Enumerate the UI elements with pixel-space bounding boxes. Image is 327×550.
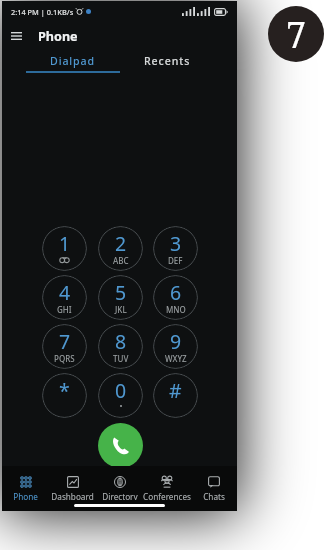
staticText: JKL xyxy=(115,304,127,315)
staticText: * xyxy=(59,377,70,404)
staticText: Phone xyxy=(38,28,78,45)
button[interactable]: 0 xyxy=(98,373,143,418)
staticText: 1 xyxy=(59,230,71,257)
staticText: TUV xyxy=(113,353,129,364)
staticText: 3 xyxy=(170,230,182,257)
staticText: 2 xyxy=(115,230,127,257)
button[interactable]: 6 xyxy=(153,275,198,320)
button[interactable]: 3 xyxy=(153,226,198,271)
staticText: 6 xyxy=(170,279,182,306)
button[interactable]: 1 xyxy=(42,226,87,271)
staticText: ABC xyxy=(113,255,129,266)
staticText: Phone xyxy=(13,491,38,500)
button[interactable]: Conferences xyxy=(143,466,190,500)
button[interactable]: Dashboard xyxy=(49,466,96,500)
staticText: PQRS xyxy=(54,353,75,364)
staticText: 0 xyxy=(115,377,127,404)
staticText: WXYZ xyxy=(165,353,187,364)
staticText: Recents xyxy=(144,54,191,68)
button[interactable]: Step 7 xyxy=(268,6,324,62)
button[interactable]: 2 xyxy=(98,226,143,271)
button[interactable]: 5 xyxy=(98,275,143,320)
button[interactable]: # xyxy=(153,373,198,418)
staticText: 7 xyxy=(59,328,71,355)
staticText: 8 xyxy=(115,328,127,355)
button[interactable]: 9 xyxy=(153,324,198,369)
button[interactable]: Chats xyxy=(190,466,237,500)
staticText: 5 xyxy=(115,279,127,306)
staticText: Chats xyxy=(203,491,225,500)
staticText: GHI xyxy=(57,304,72,315)
staticText: DEF xyxy=(168,255,183,266)
staticText: 7 xyxy=(286,10,307,59)
button[interactable]: Directory xyxy=(96,466,143,500)
staticText: Directory xyxy=(102,491,138,500)
button[interactable]: 4 xyxy=(42,275,87,320)
button[interactable]: 8 xyxy=(98,324,143,369)
button[interactable]: Phone xyxy=(2,466,49,500)
staticText: MNO xyxy=(166,304,186,315)
button[interactable]: 7 xyxy=(42,324,87,369)
staticText: 4 xyxy=(59,279,71,306)
staticText: # xyxy=(169,377,182,404)
staticText: 9 xyxy=(170,328,182,355)
staticText: Dashboard xyxy=(51,491,94,500)
button[interactable]: Call xyxy=(98,423,143,468)
staticText: 2:14 PM | 0.1KB/s xyxy=(11,7,74,17)
button[interactable]: Dialpad xyxy=(26,51,120,73)
staticText: Conferences xyxy=(143,491,191,500)
button[interactable]: Recents xyxy=(120,51,214,73)
button[interactable]: * xyxy=(42,373,87,418)
staticText: Dialpad xyxy=(50,54,96,68)
button[interactable]: Open navigation menu xyxy=(5,25,27,47)
